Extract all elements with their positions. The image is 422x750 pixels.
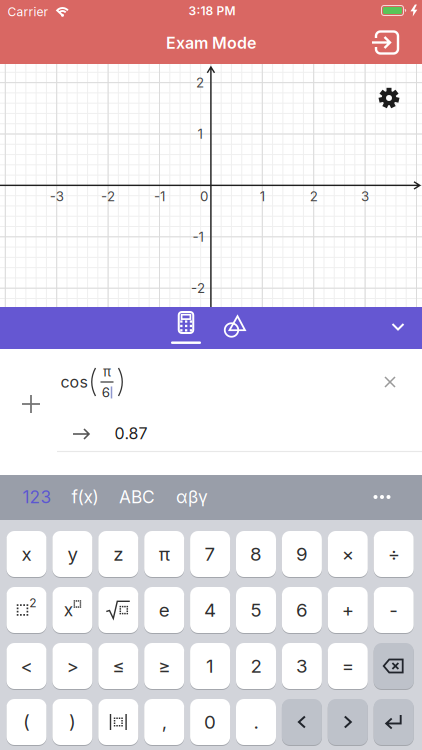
staticText: 9 — [296, 543, 308, 565]
button[interactable]: x — [6, 530, 46, 577]
button[interactable]: ABC — [119, 487, 155, 507]
button[interactable]: 4 — [190, 586, 230, 633]
staticText: Exam Mode — [166, 34, 256, 52]
staticText: 1 — [197, 126, 202, 142]
staticText: cos — [60, 373, 87, 391]
staticText: 8 — [250, 543, 262, 565]
button[interactable]: . — [236, 698, 276, 745]
staticText: 123 — [22, 487, 51, 507]
button[interactable]: 0 — [190, 698, 230, 745]
staticText: 0 — [204, 711, 216, 733]
staticText: ÷ — [388, 543, 400, 565]
button[interactable]: ) — [52, 698, 92, 745]
button[interactable]: ≥ — [144, 642, 184, 689]
staticText: 5 — [250, 599, 261, 621]
button[interactable]: 6 — [282, 586, 322, 633]
button[interactable] — [171, 310, 201, 346]
button[interactable]: z — [98, 530, 138, 577]
button[interactable]: ÷ — [374, 530, 414, 577]
button[interactable]: > — [52, 642, 92, 689]
button[interactable] — [224, 315, 246, 338]
button[interactable]: αβγ — [176, 487, 208, 507]
button[interactable] — [328, 698, 368, 745]
button[interactable]: ≤ — [98, 642, 138, 689]
staticText: 2 — [196, 75, 204, 90]
staticText: = — [342, 655, 354, 677]
button[interactable] — [372, 30, 398, 54]
staticText: x — [64, 600, 73, 620]
staticText: 2 — [250, 655, 261, 677]
staticText: x — [21, 543, 31, 565]
button[interactable]: ( — [6, 698, 46, 745]
button[interactable] — [98, 586, 138, 633]
button[interactable]: 3 — [282, 642, 322, 689]
button[interactable] — [378, 87, 400, 109]
button[interactable]: y — [52, 530, 92, 577]
staticText: 0.87 — [114, 424, 147, 443]
staticText: 1 — [260, 188, 265, 204]
button[interactable]: f(x) — [71, 487, 98, 507]
button[interactable]: - — [374, 586, 414, 633]
staticText: -1 — [192, 229, 203, 245]
staticText: 3 — [361, 188, 369, 204]
staticText: Carrier — [7, 5, 48, 19]
staticText: -3 — [50, 188, 64, 204]
button[interactable]: 1 — [190, 642, 230, 689]
staticText: 3 — [296, 655, 308, 677]
staticText: 2 — [310, 188, 318, 204]
button[interactable]: 123 — [22, 487, 51, 507]
staticText: αβγ — [176, 487, 208, 507]
staticText: π — [159, 543, 170, 565]
button[interactable]: x — [52, 586, 92, 633]
staticText: × — [342, 543, 354, 565]
staticText: z — [113, 543, 123, 565]
staticText: 7 — [205, 543, 216, 565]
staticText: ( — [23, 711, 30, 733]
staticText: < — [20, 655, 32, 677]
button[interactable]: 5 — [236, 586, 276, 633]
staticText: + — [342, 599, 354, 621]
staticText: ≥ — [158, 655, 170, 677]
staticText: 2 — [29, 596, 36, 610]
button[interactable]: 8 — [236, 530, 276, 577]
staticText: f(x) — [71, 487, 98, 507]
staticText: > — [66, 655, 78, 677]
staticText: . — [253, 711, 258, 733]
button[interactable]: 9 — [282, 530, 322, 577]
button[interactable] — [373, 495, 390, 499]
button[interactable]: 2 — [6, 586, 46, 633]
button[interactable]: , — [144, 698, 184, 745]
button[interactable]: π — [144, 530, 184, 577]
button[interactable] — [22, 395, 40, 413]
staticText: π — [103, 364, 111, 379]
button[interactable] — [98, 698, 138, 745]
staticText: ≤ — [112, 655, 124, 677]
button[interactable]: e — [144, 586, 184, 633]
button[interactable]: 7 — [190, 530, 230, 577]
button[interactable] — [374, 698, 414, 745]
button[interactable]: = — [328, 642, 368, 689]
staticText: -2 — [191, 280, 205, 296]
staticText: e — [159, 599, 170, 621]
button[interactable]: cos — [60, 364, 123, 400]
staticText: -1 — [154, 188, 165, 204]
staticText: 0 — [200, 188, 208, 204]
staticText: 1 — [206, 655, 214, 677]
staticText: 6 — [296, 599, 308, 621]
staticText: - — [389, 599, 398, 621]
staticText: -2 — [101, 188, 115, 204]
button[interactable]: < — [6, 642, 46, 689]
button[interactable]: 2 — [236, 642, 276, 689]
staticText: , — [162, 711, 167, 733]
staticText: 3:18 PM — [188, 4, 235, 18]
staticText: 6 — [102, 385, 110, 400]
button[interactable]: + — [328, 586, 368, 633]
staticText: 4 — [204, 599, 216, 621]
button[interactable] — [385, 377, 395, 387]
staticText: ABC — [119, 487, 155, 507]
button[interactable] — [374, 642, 414, 689]
button[interactable]: × — [328, 530, 368, 577]
staticText: y — [67, 543, 77, 565]
button[interactable] — [392, 324, 403, 330]
button[interactable] — [282, 698, 322, 745]
